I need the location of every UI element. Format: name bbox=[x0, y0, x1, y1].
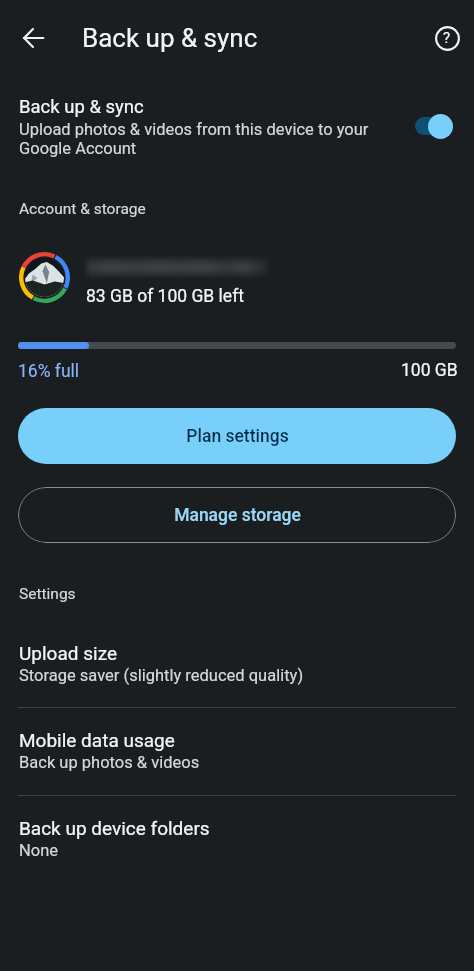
staticText: None bbox=[19, 841, 59, 860]
button[interactable] bbox=[0, 725, 474, 793]
staticText: ? bbox=[443, 29, 451, 47]
button[interactable]: Back bbox=[12, 16, 56, 60]
staticText: 100 GB bbox=[401, 360, 458, 381]
staticText: Back up device folders bbox=[19, 817, 210, 839]
button[interactable] bbox=[0, 243, 474, 317]
staticText: Plan settings bbox=[186, 426, 289, 447]
staticText: Upload photos & videos from this device … bbox=[19, 120, 375, 158]
button[interactable]: Manage storage bbox=[18, 487, 456, 543]
button[interactable] bbox=[0, 813, 474, 881]
staticText: Back up & sync bbox=[19, 96, 144, 118]
staticText: Storage saver (slightly reduced quality) bbox=[19, 666, 304, 685]
staticText: Settings bbox=[19, 585, 76, 603]
staticText: Mobile data usage bbox=[19, 729, 175, 751]
button[interactable]: Help bbox=[425, 16, 469, 60]
staticText: Back up & sync bbox=[82, 23, 258, 53]
staticText: Manage storage bbox=[174, 505, 301, 526]
button[interactable] bbox=[0, 76, 474, 170]
button[interactable] bbox=[0, 638, 474, 706]
button[interactable]: Plan settings bbox=[18, 408, 456, 464]
staticText: 83 GB of 100 GB left bbox=[86, 286, 244, 307]
staticText: 16% full bbox=[18, 361, 80, 382]
staticText: Account & storage bbox=[19, 200, 146, 218]
staticText: Upload size bbox=[19, 642, 117, 664]
staticText: Back up photos & videos bbox=[19, 753, 200, 772]
